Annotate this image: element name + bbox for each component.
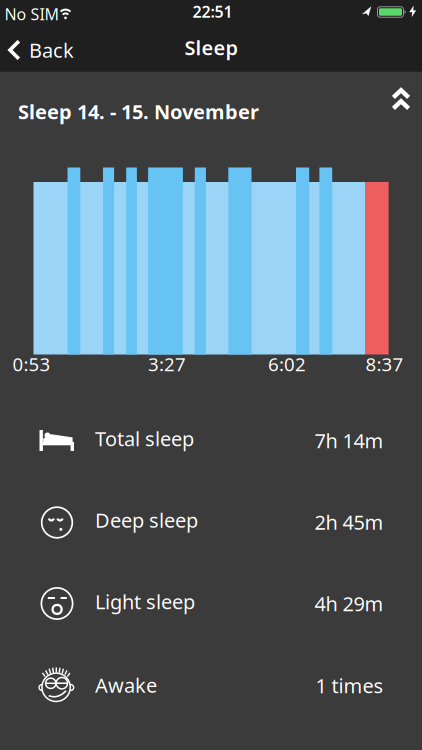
staticText: 0:53: [12, 352, 50, 376]
staticText: Awake: [95, 672, 157, 698]
staticText: 7h 14m: [314, 427, 383, 454]
button[interactable]: Back: [8, 37, 128, 63]
staticText: 3:27: [148, 352, 186, 376]
staticText: No SIM: [4, 3, 59, 25]
staticText: 1 times: [315, 672, 383, 699]
staticText: Back: [29, 37, 74, 63]
staticText: Total sleep: [95, 425, 194, 452]
staticText: 8:37: [365, 352, 403, 376]
staticText: Light sleep: [95, 588, 195, 615]
staticText: 2h 45m: [314, 509, 383, 535]
staticText: 22:51: [192, 1, 232, 22]
staticText: Sleep 14. - 15. November: [18, 98, 259, 125]
staticText: Sleep: [184, 34, 238, 61]
staticText: 6:02: [268, 352, 306, 376]
staticText: 4h 29m: [314, 590, 383, 617]
staticText: Deep sleep: [95, 507, 198, 533]
button[interactable]: Collapse: [389, 86, 413, 113]
